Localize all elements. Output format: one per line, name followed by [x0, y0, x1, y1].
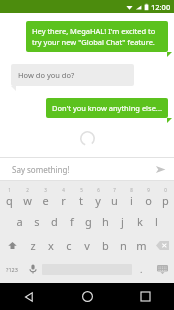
button[interactable]: 0: [157, 185, 174, 209]
button[interactable]: z: [24, 233, 42, 257]
button[interactable]: k: [131, 209, 148, 233]
staticText: 7: [113, 187, 116, 193]
staticText: c: [66, 238, 72, 253]
button[interactable]: Backspace: [150, 233, 174, 257]
staticText: 5: [80, 187, 83, 193]
staticText: r: [61, 193, 66, 208]
button[interactable]: 8: [123, 185, 140, 209]
staticText: 12:00: [151, 2, 171, 12]
staticText: o: [145, 193, 152, 208]
staticText: l: [155, 214, 158, 229]
staticText: z: [30, 238, 36, 253]
staticText: 8: [130, 187, 133, 193]
button[interactable]: a: [10, 209, 28, 233]
button[interactable]: s: [28, 209, 46, 233]
button[interactable]: 1: [0, 185, 18, 209]
button[interactable]: Hey there, MegaHAL! I'm excited to try y…: [26, 21, 168, 52]
staticText: j: [121, 214, 124, 229]
button[interactable]: g: [80, 209, 97, 233]
staticText: g: [85, 214, 92, 229]
staticText: .: [140, 263, 143, 275]
button[interactable]: l: [148, 209, 165, 233]
button[interactable]: Shift: [0, 233, 24, 257]
button[interactable]: Send: [146, 158, 174, 180]
staticText: ?123: [6, 266, 18, 273]
staticText: u: [111, 193, 118, 208]
button[interactable]: 2: [18, 185, 36, 209]
button[interactable]: 7: [106, 185, 123, 209]
button[interactable]: d: [46, 209, 63, 233]
staticText: k: [137, 214, 143, 229]
staticText: How do you do?: [18, 70, 75, 80]
button[interactable]: 4: [54, 185, 72, 209]
staticText: Hey there, MegaHAL! I'm excited to try y…: [32, 26, 162, 47]
staticText: n: [120, 238, 127, 253]
button[interactable]: .: [132, 257, 151, 281]
staticText: 2: [26, 187, 29, 193]
button[interactable]: n: [114, 233, 132, 257]
button[interactable]: h: [97, 209, 114, 233]
button[interactable]: Back: [0, 283, 58, 310]
staticText: Don't you know anything else...: [52, 103, 162, 113]
staticText: d: [51, 214, 58, 229]
staticText: q: [6, 193, 13, 208]
button[interactable]: 3: [36, 185, 54, 209]
staticText: x: [48, 238, 54, 253]
button[interactable]: Home: [58, 283, 116, 310]
staticText: 0: [164, 187, 167, 193]
button[interactable]: x: [42, 233, 60, 257]
staticText: v: [84, 238, 90, 253]
button[interactable]: j: [114, 209, 131, 233]
staticText: 9: [147, 187, 150, 193]
button[interactable]: How do you do?: [11, 64, 134, 86]
staticText: y: [95, 193, 101, 208]
staticText: 6: [97, 187, 100, 193]
button[interactable]: v: [78, 233, 96, 257]
staticText: s: [34, 214, 40, 229]
button[interactable]: Say something!: [0, 158, 146, 180]
staticText: a: [16, 214, 23, 229]
staticText: b: [102, 238, 109, 253]
staticText: f: [70, 214, 74, 229]
staticText: t: [79, 193, 83, 208]
staticText: 4: [62, 187, 65, 193]
staticText: 3: [44, 187, 47, 193]
button[interactable]: m: [132, 233, 150, 257]
staticText: w: [23, 193, 32, 208]
button[interactable]: 9: [140, 185, 157, 209]
button[interactable]: Don't you know anything else...: [46, 98, 168, 118]
staticText: m: [136, 238, 147, 253]
staticText: 1: [8, 187, 11, 193]
button[interactable]: 5: [72, 185, 89, 209]
button[interactable]: c: [60, 233, 78, 257]
button[interactable]: 6: [89, 185, 106, 209]
button[interactable]: f: [63, 209, 80, 233]
staticText: p: [162, 193, 169, 208]
button[interactable]: ?123: [0, 257, 23, 281]
staticText: h: [102, 214, 109, 229]
staticText: Say something!: [12, 164, 70, 175]
staticText: i: [130, 193, 133, 208]
staticText: e: [42, 193, 49, 208]
button[interactable]: Voice input: [23, 257, 42, 281]
button[interactable]: b: [96, 233, 114, 257]
button[interactable]: Recent apps: [116, 283, 174, 310]
button[interactable]: Hide keyboard: [151, 257, 174, 281]
